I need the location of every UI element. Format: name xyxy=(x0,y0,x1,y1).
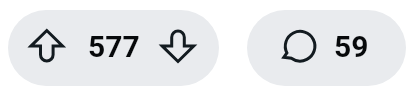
button[interactable]: Downvote xyxy=(148,10,208,86)
button[interactable]: Upvote xyxy=(17,10,77,86)
button[interactable]: 59 xyxy=(247,10,406,86)
staticText: 59 xyxy=(334,29,369,64)
staticText: 577 xyxy=(88,29,140,64)
